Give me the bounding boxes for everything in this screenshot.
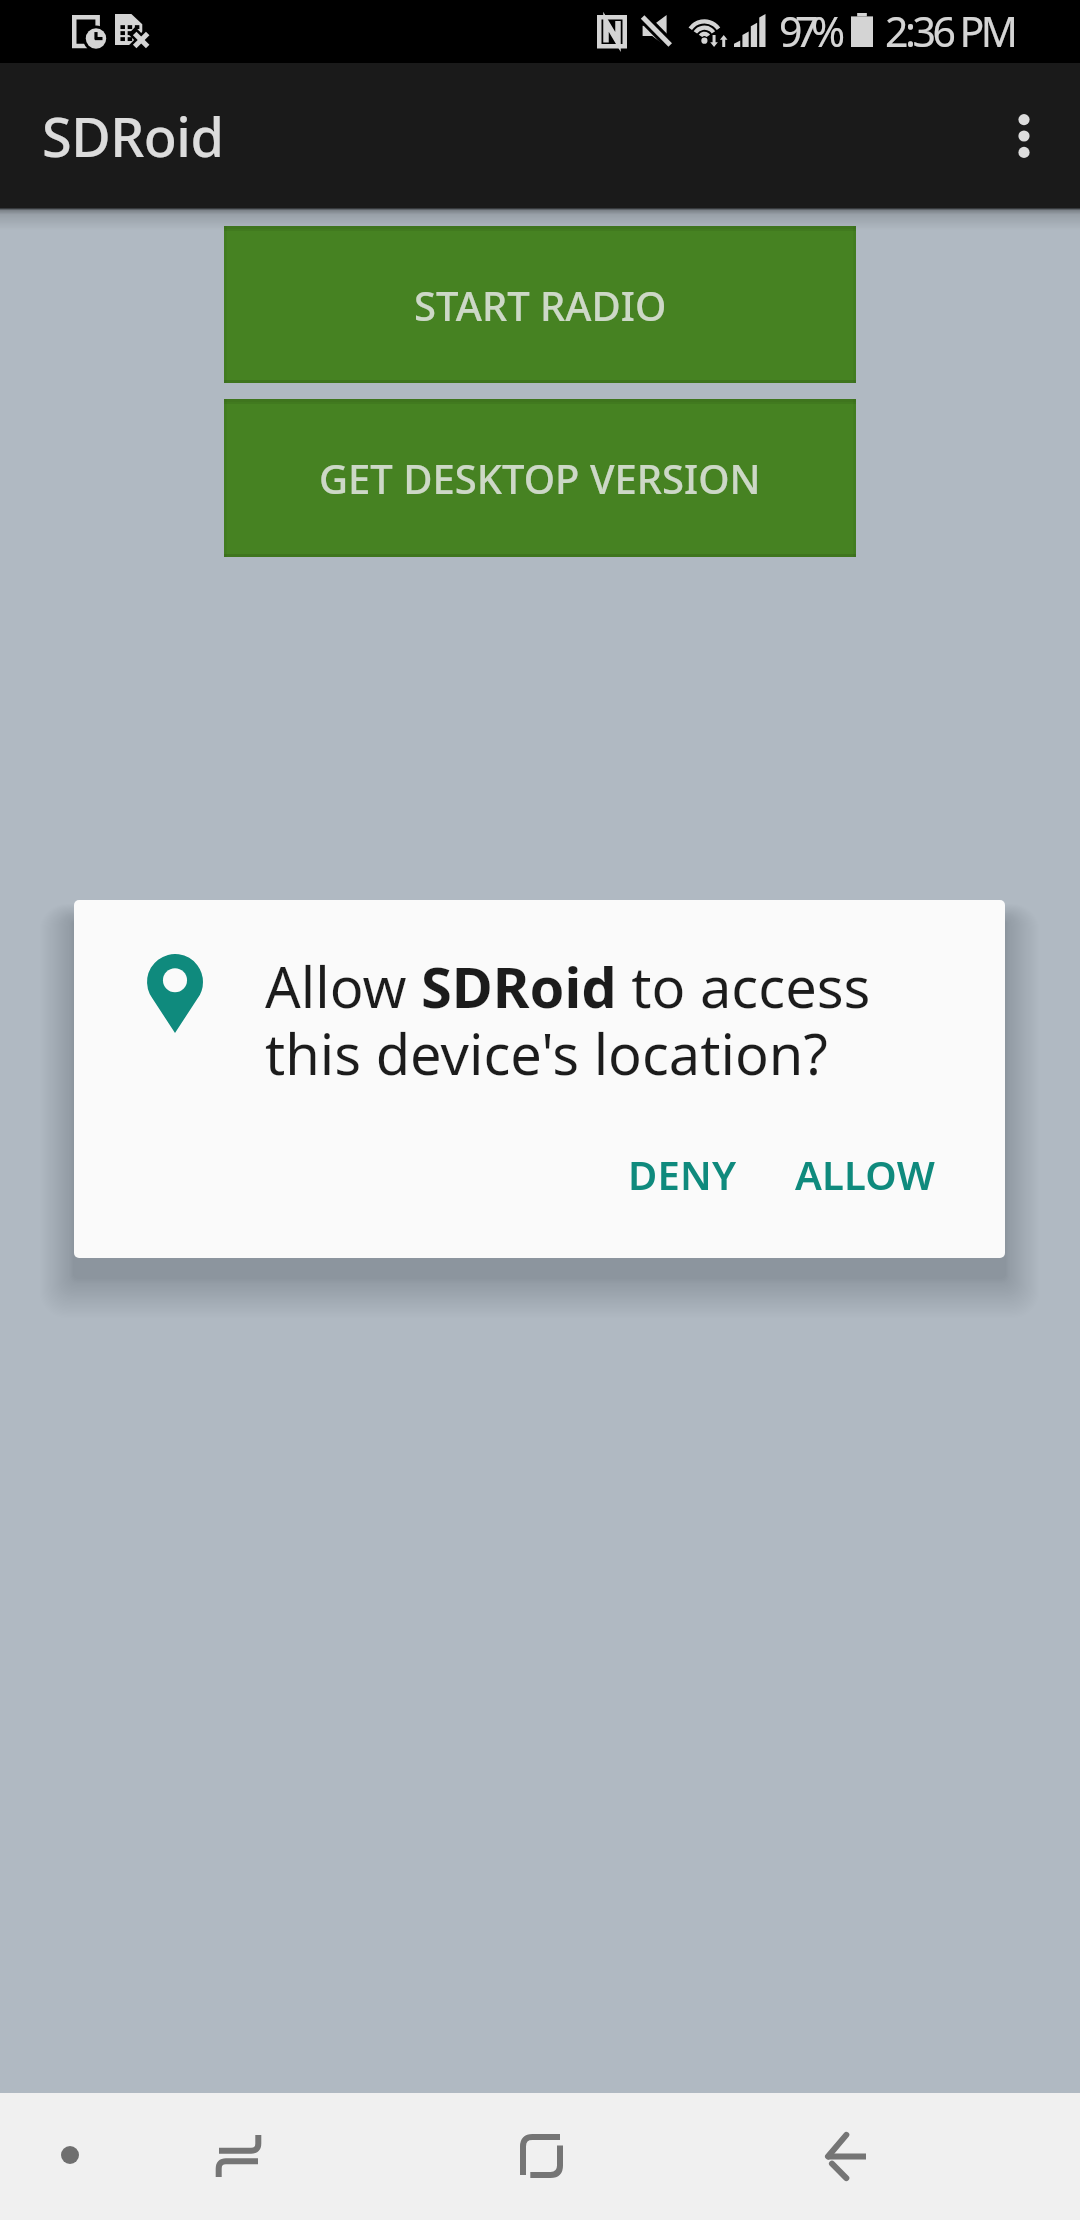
staticText: 2:36 PM (885, 3, 1015, 59)
staticText: START RADIO (414, 278, 667, 332)
staticText: DENY (628, 1147, 737, 1201)
staticText: GET DESKTOP VERSION (319, 451, 761, 505)
button[interactable]: More options (968, 80, 1080, 192)
staticText: 97% (779, 3, 838, 59)
staticText: Allow SDRoid to access this device's loc… (265, 948, 911, 1091)
button[interactable]: Home (469, 2108, 613, 2204)
button[interactable]: DENY (604, 1133, 761, 1215)
button[interactable]: Assistant (22, 2107, 118, 2203)
button[interactable]: START RADIO (224, 226, 856, 383)
button[interactable]: Back (773, 2108, 917, 2204)
staticText: ALLOW (795, 1147, 935, 1201)
staticText: SDRoid (42, 99, 224, 173)
button[interactable]: GET DESKTOP VERSION (224, 399, 856, 557)
button[interactable]: Recent apps (166, 2108, 310, 2204)
button[interactable]: ALLOW (771, 1133, 959, 1215)
